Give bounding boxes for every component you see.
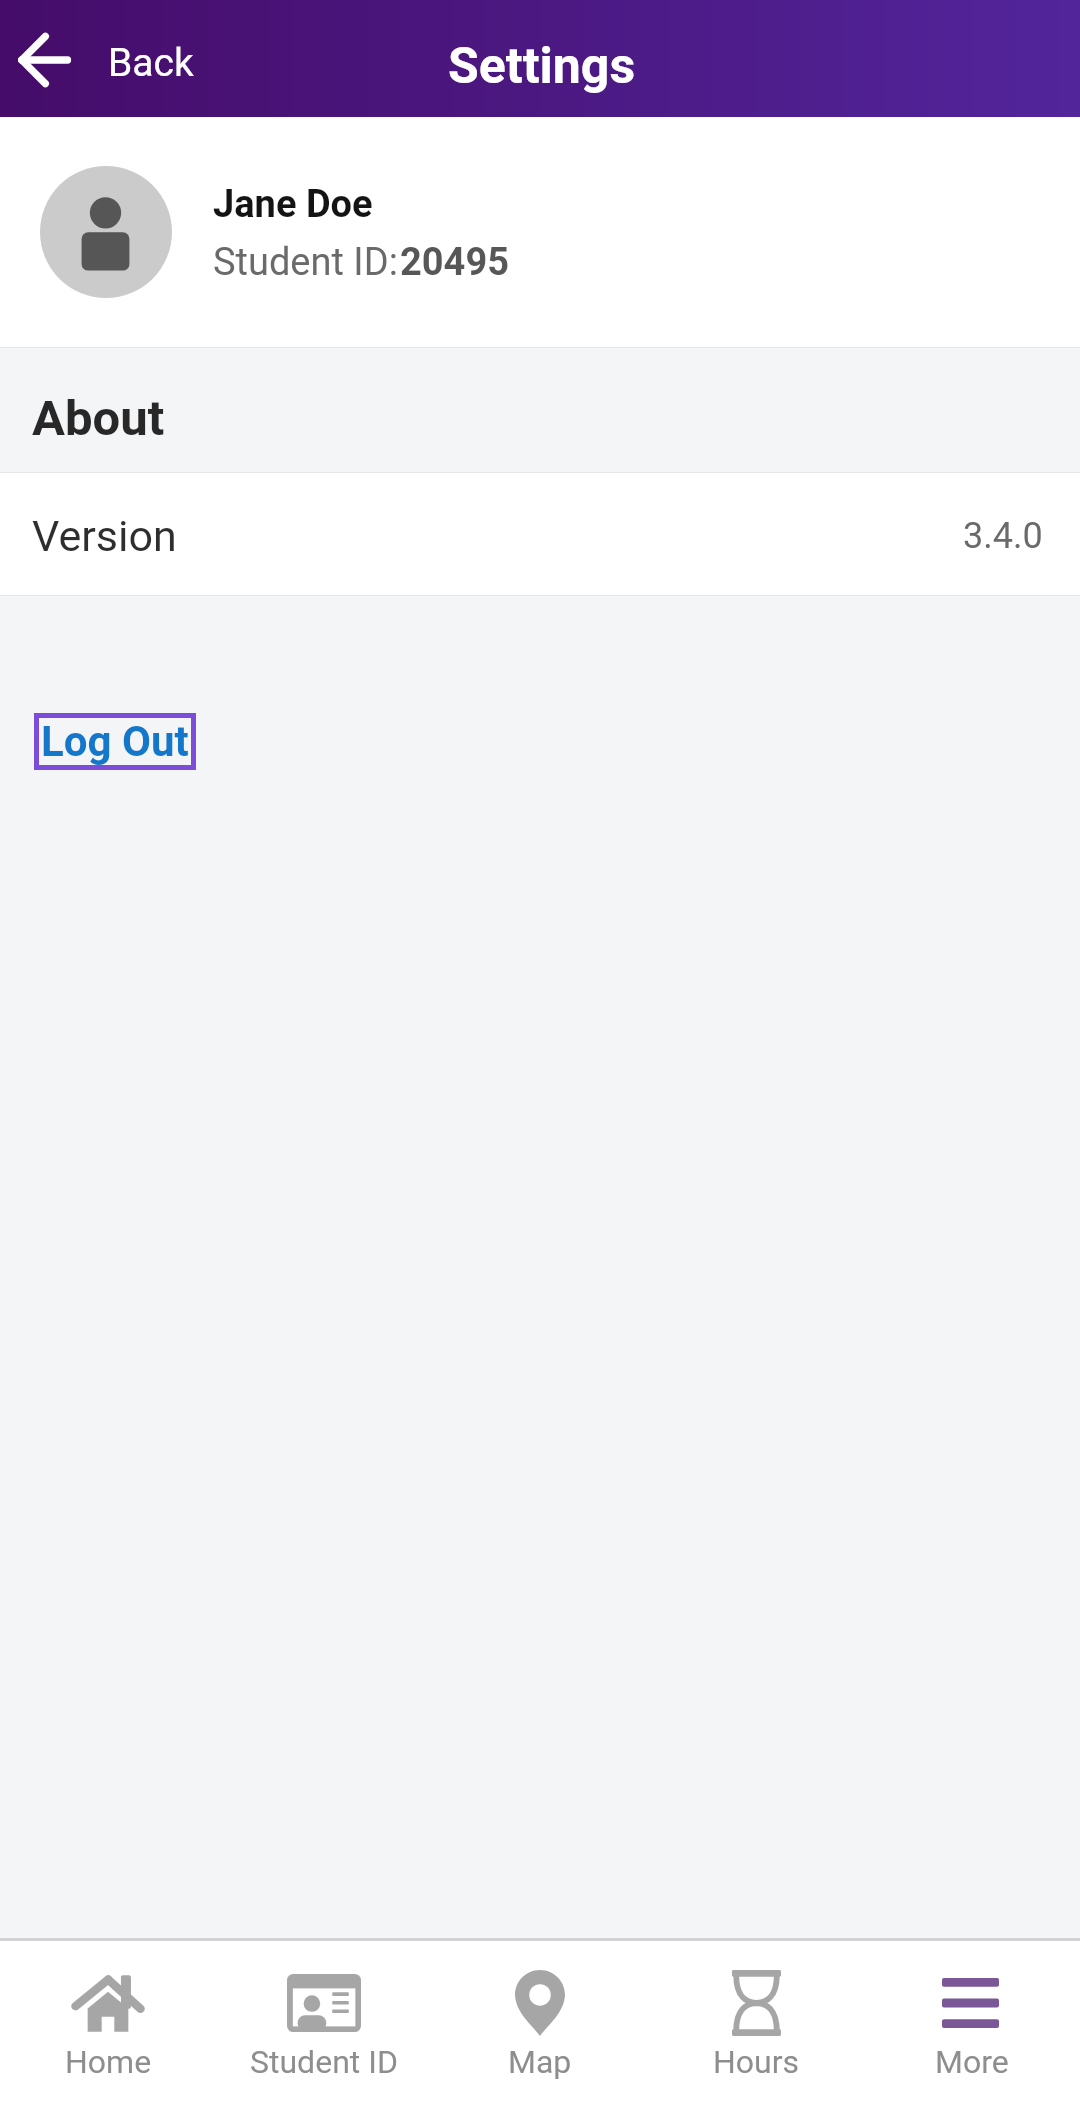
staticText: Home	[65, 2043, 152, 2081]
button[interactable]: Home	[0, 1941, 216, 2122]
staticText: Map	[508, 2043, 572, 2081]
staticText: 20495	[400, 240, 510, 285]
button[interactable]: More	[864, 1941, 1080, 2122]
staticText: Hours	[713, 2043, 800, 2081]
staticText: Back	[108, 40, 194, 86]
staticText: Student ID	[250, 2043, 398, 2081]
staticText: Version	[32, 511, 177, 561]
staticText: Log Out	[41, 717, 189, 766]
button[interactable]: Back	[0, 23, 216, 95]
button[interactable]: Hours	[648, 1941, 864, 2122]
staticText: More	[935, 2043, 1009, 2081]
button[interactable]: Map	[432, 1941, 648, 2122]
button[interactable]: Log Out	[34, 713, 196, 770]
button[interactable]: Version	[0, 473, 1080, 595]
staticText: About	[32, 390, 165, 447]
staticText: Settings	[448, 37, 636, 96]
staticText: Student ID:	[213, 240, 398, 285]
button[interactable]: Student ID	[216, 1941, 432, 2122]
staticText: 3.4.0	[963, 515, 1043, 557]
staticText: Jane Doe	[213, 182, 373, 227]
